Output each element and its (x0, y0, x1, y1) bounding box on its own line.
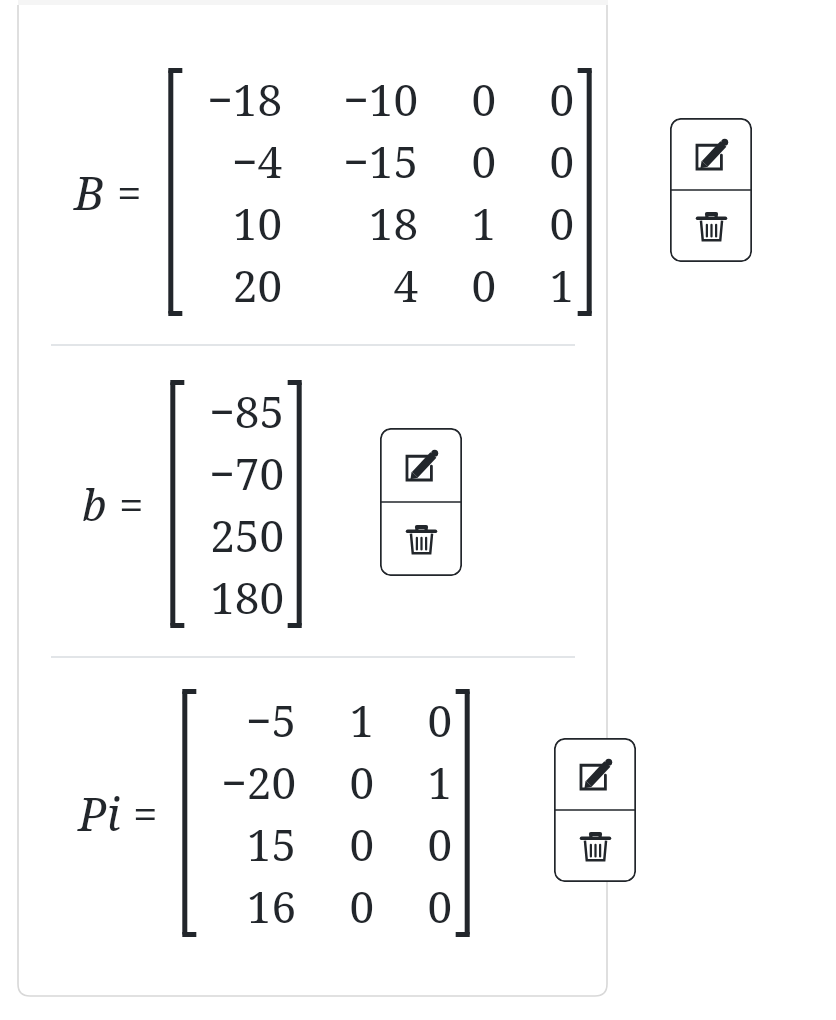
button[interactable]: Edit (554, 738, 636, 810)
staticText: −15 (343, 131, 418, 191)
button[interactable]: Delete (554, 810, 636, 882)
staticText: 0 (471, 255, 496, 315)
staticText: 180 (210, 567, 284, 627)
staticText: 0 (427, 814, 452, 874)
staticText: 0 (427, 876, 452, 936)
staticText: −70 (209, 443, 284, 503)
button[interactable]: Delete (670, 190, 752, 262)
staticText: −85 (209, 381, 284, 441)
staticText: 0 (427, 690, 452, 750)
staticText: −4 (231, 131, 282, 191)
staticText: 0 (549, 193, 574, 253)
button[interactable]: Edit (670, 118, 752, 190)
staticText: −20 (221, 752, 296, 812)
staticText: 1 (349, 690, 374, 750)
staticText: 0 (349, 876, 374, 936)
staticText: b (82, 474, 107, 534)
staticText: 18 (368, 193, 418, 253)
staticText: 0 (549, 131, 574, 191)
button[interactable]: Edit (380, 428, 462, 502)
staticText: 1 (427, 752, 452, 812)
staticText: 250 (210, 505, 284, 565)
staticText: −18 (207, 69, 282, 129)
staticText: 0 (549, 69, 574, 129)
staticText: 0 (471, 131, 496, 191)
staticText: −10 (343, 69, 418, 129)
staticText: 1 (471, 193, 496, 253)
staticText: 15 (246, 814, 296, 874)
button[interactable]: Delete (380, 502, 462, 576)
staticText: 20 (232, 255, 282, 315)
staticText: 0 (349, 752, 374, 812)
staticText: B (74, 161, 105, 224)
staticText: 16 (246, 876, 296, 936)
staticText: 0 (349, 814, 374, 874)
staticText: Pi (78, 782, 121, 845)
staticText: −5 (245, 690, 296, 750)
staticText: 1 (549, 255, 574, 315)
staticText: 10 (232, 193, 282, 253)
staticText: = (117, 162, 142, 222)
staticText: 4 (393, 255, 418, 315)
staticText: = (119, 474, 144, 534)
staticText: 0 (471, 69, 496, 129)
staticText: = (133, 783, 158, 843)
